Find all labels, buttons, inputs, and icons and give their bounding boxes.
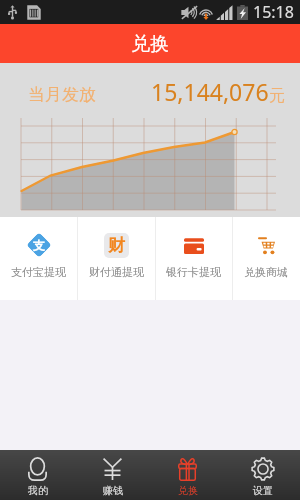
button[interactable]: 财 [77, 217, 155, 300]
staticText: 兑换 [131, 32, 169, 56]
staticText: 兑换 [178, 484, 198, 497]
staticText: 支 [33, 238, 45, 253]
staticText: 15,144,076 [151, 76, 269, 107]
staticText: 兑换商城 [244, 265, 288, 279]
staticText: 设置 [253, 484, 273, 497]
staticText: 银行卡提现 [166, 265, 221, 279]
staticText: 赚钱 [103, 484, 123, 497]
staticText: 我的 [28, 484, 48, 497]
button[interactable]: Earn money [75, 450, 150, 500]
button[interactable]: 支 [0, 217, 77, 300]
staticText: 元 [269, 86, 285, 106]
staticText: 财 [108, 235, 125, 256]
staticText: 当月发放 [28, 84, 96, 105]
button[interactable]: 兑换商城 [232, 217, 300, 300]
button[interactable]: Settings [225, 450, 300, 500]
staticText: 支付宝提现 [11, 265, 66, 279]
button[interactable]: 银行卡提现 [155, 217, 232, 300]
staticText: 15:18 [253, 1, 294, 23]
button[interactable]: Redeem [150, 450, 225, 500]
button[interactable]: My profile [0, 450, 75, 500]
staticText: 财付通提现 [89, 265, 144, 279]
